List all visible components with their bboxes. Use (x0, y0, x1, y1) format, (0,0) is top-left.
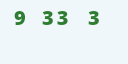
staticText: 33 (42, 4, 72, 31)
staticText: 3 (88, 4, 103, 31)
staticText: 9 (14, 4, 29, 31)
